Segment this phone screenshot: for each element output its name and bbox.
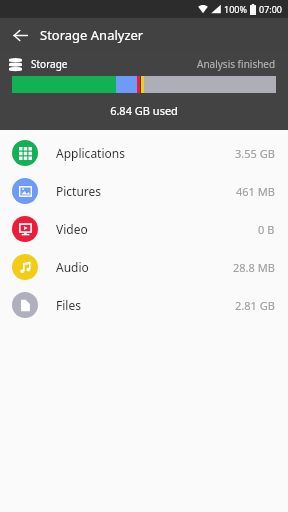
staticText: Files [56,297,81,313]
button[interactable]: Video [0,210,288,248]
staticText: 2.81 GB [235,298,275,313]
staticText: 100% [224,3,247,15]
staticText: Video [56,221,88,237]
button[interactable]: Audio [0,248,288,286]
staticText: 07:00 [259,3,283,15]
staticText: Pictures [56,183,102,199]
staticText: Storage Analyzer [40,26,144,44]
staticText: 28.8 MB [233,260,275,275]
button[interactable]: Applications [0,134,288,172]
staticText: 3.55 GB [235,146,275,161]
staticText: Analysis finished [197,57,276,71]
button[interactable]: Back [5,20,35,50]
staticText: 0 B [258,222,275,237]
staticText: Applications [56,145,125,161]
staticText: 6.84 GB used [0,103,288,118]
button[interactable]: Pictures [0,172,288,210]
staticText: Storage [31,57,68,71]
staticText: 461 MB [236,184,275,199]
button[interactable]: Files [0,286,288,324]
staticText: Audio [56,259,89,275]
